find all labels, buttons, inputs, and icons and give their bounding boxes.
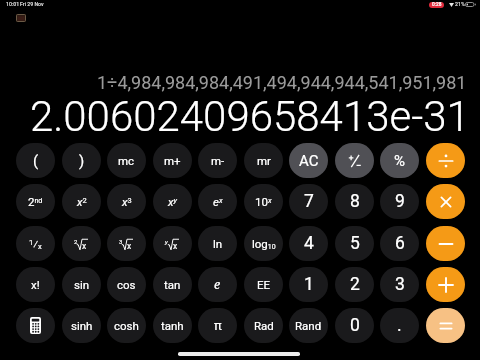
staticText: 0 (350, 315, 360, 336)
button[interactable]: sin (62, 267, 101, 302)
staticText: . (397, 315, 402, 336)
staticText: 1 (304, 274, 314, 295)
staticText: π (214, 318, 222, 333)
button[interactable]: x2 (62, 184, 101, 219)
button[interactable]: Basic calculator (16, 308, 55, 343)
button[interactable]: xy (153, 184, 192, 219)
staticText: Rad (254, 319, 274, 332)
staticText: x3 (122, 195, 132, 208)
button[interactable]: Plus minus (335, 143, 374, 178)
button[interactable]: Euler's number (198, 267, 237, 302)
button[interactable]: cos (107, 267, 146, 302)
staticText: e (214, 276, 221, 293)
staticText: 6 (395, 233, 405, 254)
button[interactable]: EE (244, 267, 283, 302)
button[interactable]: m+ (153, 143, 192, 178)
staticText: 9 (395, 191, 405, 212)
staticText: 2nd (28, 195, 43, 208)
staticText: 21% (455, 1, 465, 7)
button[interactable]: ( (16, 143, 55, 178)
button[interactable]: x! (16, 267, 55, 302)
button[interactable]: sinh (62, 308, 101, 343)
button[interactable]: Minus (426, 226, 465, 261)
button[interactable]: ex (198, 184, 237, 219)
staticText: Rand (295, 319, 322, 332)
button[interactable]: Multiply (426, 184, 465, 219)
staticText: tanh (161, 319, 184, 332)
button[interactable]: y root (153, 226, 192, 261)
staticText: 0:28 (432, 2, 442, 8)
staticText: cosh (114, 319, 139, 332)
button[interactable]: 8 (335, 184, 374, 219)
staticText: ln (213, 237, 223, 250)
button[interactable]: tanh (153, 308, 192, 343)
button[interactable]: 10x (244, 184, 283, 219)
button[interactable]: 3 (380, 267, 419, 302)
button[interactable]: Rad (244, 308, 283, 343)
button[interactable]: 2nd (16, 184, 55, 219)
staticText: 3 (395, 274, 405, 295)
button[interactable]: cube root (107, 226, 146, 261)
staticText: tan (164, 278, 181, 291)
button[interactable]: ln (198, 226, 237, 261)
staticText: 3 (119, 238, 123, 245)
button[interactable]: 9 (380, 184, 419, 219)
button[interactable]: Rand (289, 308, 328, 343)
button[interactable]: mc (107, 143, 146, 178)
staticText: ex (213, 195, 223, 208)
button[interactable]: one over x (16, 226, 55, 261)
staticText: y (165, 238, 168, 245)
staticText: 8 (350, 191, 360, 212)
button[interactable]: 2 (335, 267, 374, 302)
button[interactable]: 5 (335, 226, 374, 261)
button[interactable]: Equals (426, 308, 465, 343)
staticText: m- (211, 154, 225, 167)
button[interactable]: Divide (426, 143, 465, 178)
staticText: x2 (77, 195, 87, 208)
button[interactable]: ) (62, 143, 101, 178)
button[interactable]: square root (62, 226, 101, 261)
button[interactable]: 6 (380, 226, 419, 261)
button[interactable]: 0 (335, 308, 374, 343)
button[interactable]: π (198, 308, 237, 343)
staticText: 2 (74, 238, 78, 245)
staticText: 2 (350, 274, 360, 295)
staticText: ) (79, 152, 85, 170)
staticText: sin (74, 278, 90, 291)
button[interactable]: % (380, 143, 419, 178)
staticText: m+ (164, 154, 181, 167)
staticText: 10x (255, 195, 272, 208)
button[interactable]: tan (153, 267, 192, 302)
button[interactable]: Plus (426, 267, 465, 302)
staticText: AC (299, 152, 319, 170)
staticText: ( (33, 152, 39, 170)
staticText: 7 (304, 191, 314, 212)
staticText: % (394, 152, 405, 170)
button[interactable]: mr (244, 143, 283, 178)
staticText: cos (117, 278, 136, 291)
button[interactable]: m- (198, 143, 237, 178)
staticText: mr (257, 154, 271, 167)
staticText: mc (118, 154, 135, 167)
staticText: EE (257, 278, 271, 291)
button[interactable]: cosh (107, 308, 146, 343)
staticText: 10:01 (6, 1, 20, 7)
staticText: x! (31, 278, 40, 291)
staticText: 2.00602409658413e-31 (30, 92, 470, 141)
staticText: 1⁄x (29, 238, 42, 250)
button[interactable]: 7 (289, 184, 328, 219)
button[interactable]: AC (289, 143, 328, 178)
staticText: x (127, 241, 132, 251)
staticText: 5 (350, 233, 360, 254)
staticText: Fri 29 Nov (20, 1, 44, 7)
button[interactable]: log base 10 (244, 226, 283, 261)
button[interactable]: . (380, 308, 419, 343)
button[interactable]: 1 (289, 267, 328, 302)
staticText: sinh (71, 319, 93, 332)
staticText: xy (168, 195, 177, 208)
button[interactable]: 4 (289, 226, 328, 261)
staticText: 4 (304, 233, 314, 254)
staticText: x (82, 241, 87, 251)
button[interactable]: x3 (107, 184, 146, 219)
staticText: log10 (252, 237, 276, 251)
